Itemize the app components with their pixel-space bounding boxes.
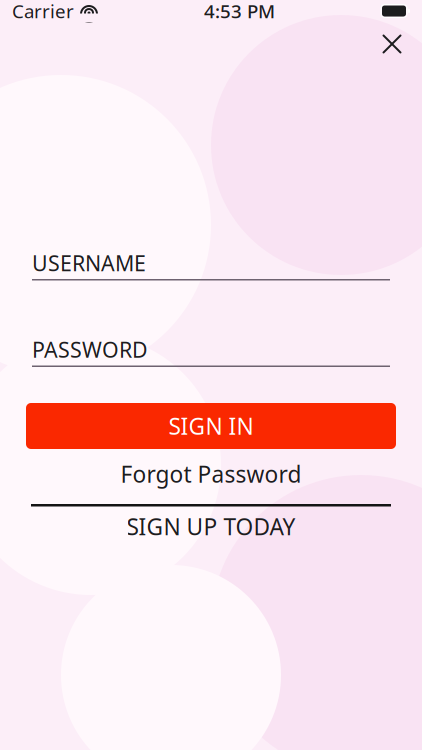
staticText: Carrier [12,0,74,23]
button[interactable]: SIGN IN [26,403,396,449]
staticText: USERNAME [32,249,146,277]
staticText: PASSWORD [32,335,148,364]
button[interactable]: SIGN UP TODAY [26,514,396,538]
button[interactable]: Close [370,22,414,66]
staticText: Forgot Password [120,459,301,489]
button[interactable]: Forgot Password [26,462,396,486]
button[interactable]: PASSWORD [0,338,422,367]
staticText: SIGN IN [168,411,253,441]
button[interactable]: USERNAME [0,252,422,280]
staticText: 4:53 PM [204,0,275,23]
staticText: SIGN UP TODAY [126,511,295,541]
